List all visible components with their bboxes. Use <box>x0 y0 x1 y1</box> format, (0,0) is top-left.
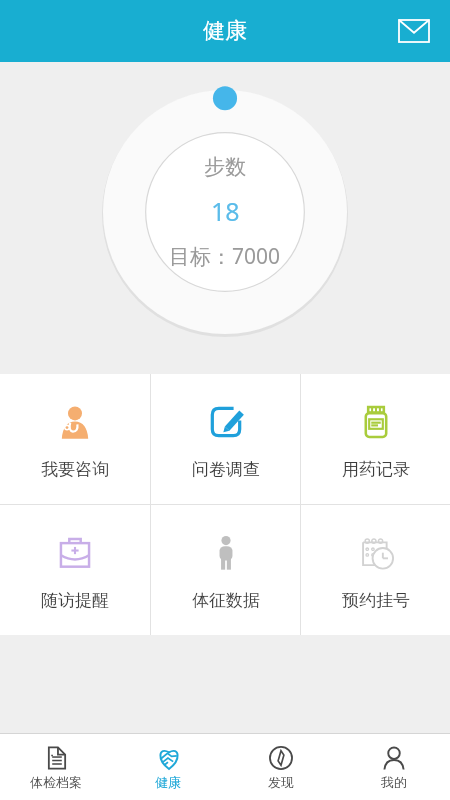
button[interactable]: 体检档案 <box>0 734 112 800</box>
staticText: 预约挂号 <box>342 590 410 611</box>
button[interactable]: 健康 <box>112 734 224 800</box>
staticText: 发现 <box>268 774 294 790</box>
staticText: 我要咨询 <box>41 459 109 480</box>
staticText: 健康 <box>155 774 181 790</box>
staticText: 健康 <box>203 17 247 45</box>
button[interactable]: 我要咨询 <box>0 374 150 504</box>
staticText: 步数 <box>204 154 246 180</box>
staticText: 18 <box>211 194 240 228</box>
staticText: 随访提醒 <box>41 590 109 611</box>
staticText: 目标：7000 <box>169 242 281 271</box>
staticText: 我的 <box>381 774 407 790</box>
button[interactable]: 随访提醒 <box>0 505 150 635</box>
button[interactable]: 预约挂号 <box>301 505 450 635</box>
staticText: 问卷调查 <box>192 459 260 480</box>
staticText: 体检档案 <box>30 774 82 790</box>
staticText: 用药记录 <box>342 459 410 480</box>
button[interactable]: 体征数据 <box>151 505 300 635</box>
button[interactable]: 发现 <box>224 734 337 800</box>
button[interactable]: Messages <box>392 9 436 53</box>
staticText: 体征数据 <box>192 590 260 611</box>
button[interactable]: 用药记录 <box>301 374 450 504</box>
button[interactable]: 问卷调查 <box>151 374 300 504</box>
button[interactable]: 我的 <box>337 734 450 800</box>
